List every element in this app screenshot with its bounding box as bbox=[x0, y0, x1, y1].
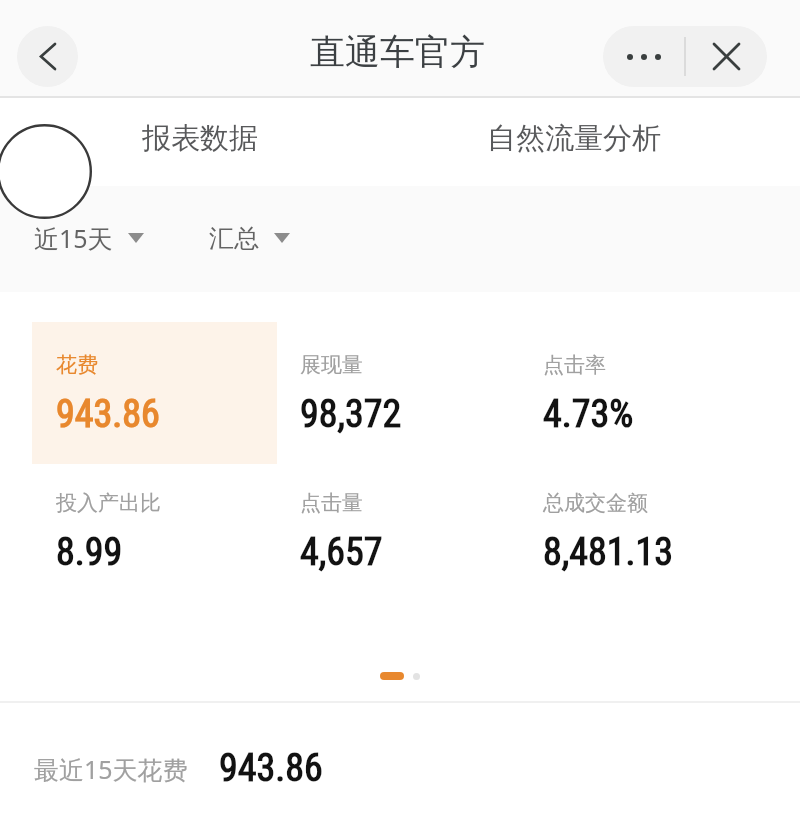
staticText: 自然流量分析 bbox=[487, 120, 661, 157]
staticText: 最近15天花费 bbox=[34, 752, 188, 786]
staticText: 943.86 bbox=[219, 746, 323, 791]
button[interactable]: More options bbox=[603, 26, 684, 87]
staticText: 总成交金额 bbox=[543, 490, 648, 516]
button[interactable]: 报表数据 bbox=[120, 99, 280, 177]
staticText: 点击率 bbox=[543, 352, 606, 378]
button[interactable]: Back bbox=[17, 26, 78, 87]
button[interactable]: 自然流量分析 bbox=[470, 99, 677, 177]
staticText: 投入产出比 bbox=[56, 490, 161, 516]
staticText: 4.73% bbox=[543, 392, 634, 437]
staticText: 直通车官方 bbox=[310, 30, 485, 74]
button[interactable]: 最近15天花费 bbox=[34, 746, 323, 791]
staticText: 点击量 bbox=[300, 490, 363, 516]
staticText: 98,372 bbox=[300, 392, 402, 437]
staticText: 花费 bbox=[56, 352, 98, 378]
button[interactable]: 总成交金额 bbox=[543, 490, 763, 575]
staticText: 报表数据 bbox=[142, 120, 258, 157]
staticText: 943.86 bbox=[56, 392, 160, 437]
staticText: 近15天 bbox=[34, 221, 113, 255]
staticText: 展现量 bbox=[300, 352, 363, 378]
button[interactable]: Page 1 bbox=[380, 672, 404, 680]
staticText: 8,481.13 bbox=[543, 530, 674, 575]
button[interactable]: 展现量 bbox=[300, 352, 520, 437]
button[interactable]: 近15天 bbox=[26, 212, 152, 264]
button[interactable]: 投入产出比 bbox=[56, 490, 276, 575]
button[interactable]: Close bbox=[686, 26, 767, 87]
button[interactable]: 汇总 bbox=[201, 212, 298, 264]
button[interactable]: 花费 bbox=[56, 352, 276, 437]
staticText: 汇总 bbox=[209, 223, 259, 254]
button[interactable]: Page 2 bbox=[413, 673, 420, 680]
staticText: 8.99 bbox=[56, 530, 123, 575]
button[interactable]: 点击率 bbox=[543, 352, 763, 437]
staticText: 4,657 bbox=[300, 530, 383, 575]
button[interactable]: 点击量 bbox=[300, 490, 520, 575]
